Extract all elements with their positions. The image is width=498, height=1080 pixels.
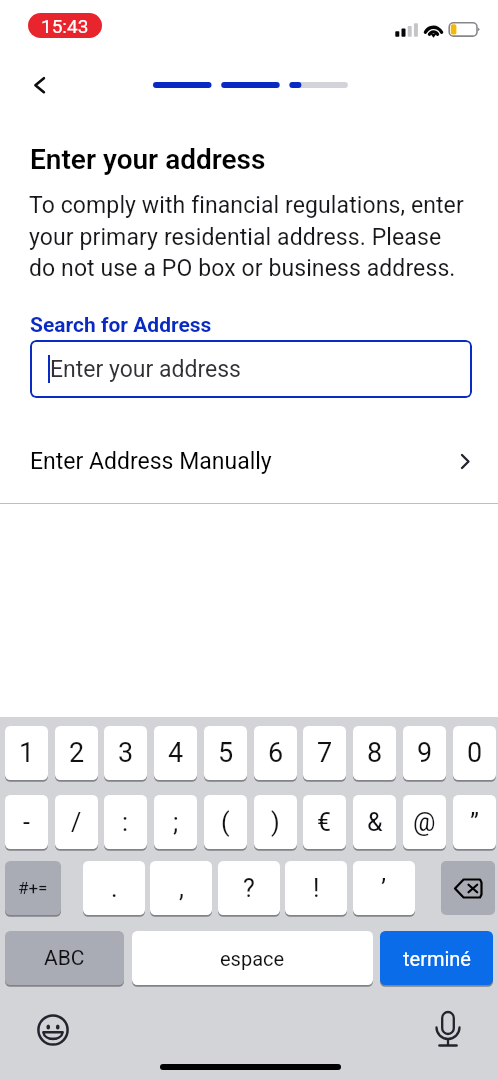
button[interactable]: Emoji keyboard	[36, 1013, 70, 1047]
staticText: -	[23, 808, 30, 837]
button[interactable]: .	[83, 861, 145, 917]
staticText: terminé	[403, 947, 471, 970]
staticText: 1	[19, 737, 35, 769]
button[interactable]: 2	[55, 726, 98, 782]
staticText: (	[221, 808, 230, 837]
button[interactable]: 5	[204, 726, 247, 782]
button[interactable]: /	[55, 795, 98, 851]
button[interactable]: Enter your address	[30, 340, 472, 398]
staticText: !	[313, 874, 320, 903]
staticText: &	[367, 808, 383, 837]
button[interactable]: 8	[353, 726, 396, 782]
button[interactable]: )	[254, 795, 297, 851]
staticText: Enter your address	[50, 356, 241, 383]
button[interactable]: ABC	[5, 931, 124, 987]
staticText: 3	[118, 737, 134, 769]
button[interactable]: :	[104, 795, 147, 851]
button[interactable]: ’	[353, 861, 415, 917]
staticText: .	[111, 874, 118, 903]
staticText: :	[122, 808, 129, 837]
staticText: ;	[173, 808, 179, 837]
button[interactable]: ,	[150, 861, 212, 917]
staticText: Enter Address Manually	[30, 448, 272, 475]
staticText: 2	[69, 737, 85, 769]
button[interactable]: ?	[218, 861, 280, 917]
staticText: 4	[168, 737, 184, 769]
button[interactable]: -	[5, 795, 48, 851]
staticText: Enter your address	[30, 143, 266, 176]
button[interactable]: 3	[104, 726, 147, 782]
staticText: @	[413, 808, 436, 837]
staticText: /	[71, 808, 82, 837]
button[interactable]: Dictation	[433, 1010, 463, 1050]
staticText: 5	[218, 737, 234, 769]
staticText: 15:43	[41, 15, 89, 37]
staticText: espace	[220, 947, 285, 970]
button[interactable]: 6	[254, 726, 297, 782]
button[interactable]: (	[204, 795, 247, 851]
button[interactable]: Back	[22, 66, 58, 102]
staticText: 7	[317, 737, 333, 769]
staticText: ABC	[44, 946, 85, 971]
button[interactable]: terminé	[380, 931, 493, 987]
staticText: €	[317, 808, 332, 837]
button[interactable]: #+=	[5, 861, 61, 917]
staticText: ’	[381, 874, 387, 903]
button[interactable]: 9	[403, 726, 446, 782]
staticText: ”	[470, 808, 479, 837]
button[interactable]: ”	[453, 795, 496, 851]
button[interactable]: Enter Address Manually	[0, 434, 498, 488]
button[interactable]: 4	[154, 726, 197, 782]
button[interactable]: €	[303, 795, 346, 851]
staticText: Search for Address	[30, 313, 212, 338]
button[interactable]: espace	[132, 931, 373, 987]
button[interactable]: 0	[453, 726, 496, 782]
staticText: 0	[467, 737, 483, 769]
staticText: ,	[179, 874, 184, 903]
button[interactable]: 7	[303, 726, 346, 782]
staticText: ?	[243, 874, 255, 903]
staticText: To comply with financial regulations, en…	[29, 192, 469, 281]
button[interactable]: ;	[154, 795, 197, 851]
staticText: 9	[417, 737, 433, 769]
button[interactable]: &	[353, 795, 396, 851]
button[interactable]: 1	[5, 726, 48, 782]
staticText: 6	[268, 737, 284, 769]
button[interactable]: !	[285, 861, 347, 917]
button[interactable]: Backspace	[441, 861, 495, 915]
staticText: 8	[367, 737, 383, 769]
button[interactable]: @	[403, 795, 446, 851]
staticText: #+=	[18, 878, 48, 898]
staticText: )	[271, 808, 280, 837]
